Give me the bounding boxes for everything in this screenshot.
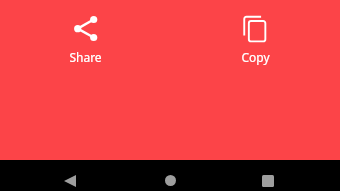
other: Share (73, 16, 99, 42)
button[interactable]: Share (45, 12, 125, 70)
staticText: Copy (241, 49, 270, 65)
other: Copy (243, 16, 269, 42)
button[interactable]: Back (50, 160, 90, 191)
button[interactable]: Home (150, 160, 190, 191)
button[interactable]: Recent apps (248, 160, 288, 191)
staticText: Share (69, 49, 102, 65)
button[interactable]: Copy (215, 12, 295, 70)
